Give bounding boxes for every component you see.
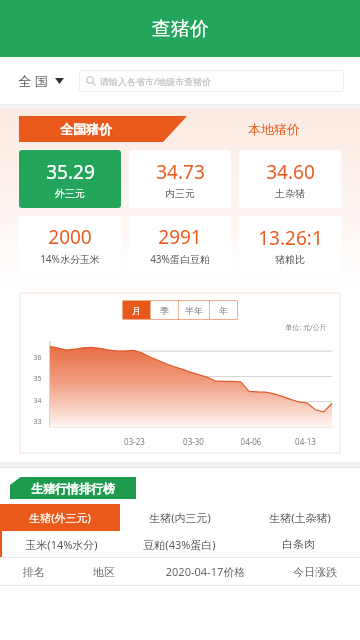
button[interactable]: 季: [151, 301, 178, 319]
button[interactable]: 13.26:1: [239, 216, 341, 274]
staticText: 35.29: [46, 159, 95, 185]
staticText: 本地猪价: [248, 121, 300, 137]
staticText: 请输入各省市/地级市查猪价: [100, 75, 212, 87]
staticText: 白条肉: [282, 537, 315, 551]
staticText: 生猪行情排行榜: [31, 481, 115, 496]
staticText: 全 国: [18, 72, 48, 90]
staticText: 03-23: [105, 436, 164, 447]
staticText: 地区: [67, 565, 141, 579]
button[interactable]: 月: [123, 301, 150, 319]
staticText: 排名: [0, 565, 67, 579]
staticText: 外三元: [55, 187, 85, 200]
staticText: 玉米(14%水分): [25, 537, 98, 552]
staticText: 36: [33, 353, 42, 363]
staticText: 内三元: [165, 187, 195, 200]
staticText: 猪粮比: [275, 253, 305, 266]
staticText: 月: [132, 305, 141, 316]
button[interactable]: 全国猪价: [19, 116, 187, 142]
staticText: 04-13: [279, 436, 332, 447]
staticText: 今日涨跌: [270, 565, 360, 579]
staticText: 单位: 元/公斤: [285, 323, 327, 333]
staticText: 2991: [158, 224, 202, 250]
button[interactable]: 生猪行情排行榜: [10, 477, 136, 499]
staticText: 豆粕(43%蛋白): [143, 537, 216, 552]
button[interactable]: 本地猪价: [187, 116, 360, 142]
button[interactable]: 白条肉: [239, 531, 358, 557]
staticText: 生猪(内三元): [149, 510, 211, 525]
button[interactable]: 豆粕(43%蛋白): [120, 531, 239, 557]
button[interactable]: 年: [210, 301, 237, 319]
staticText: 03-30: [164, 436, 223, 447]
staticText: 2020-04-17价格: [141, 564, 270, 579]
staticText: 14%水分玉米: [40, 252, 100, 266]
staticText: 生猪(土杂猪): [269, 510, 331, 525]
staticText: 33: [33, 417, 42, 427]
staticText: 半年: [185, 305, 203, 316]
button[interactable]: 34.73: [129, 150, 231, 208]
button[interactable]: 半年: [179, 301, 209, 319]
staticText: 查猪价: [152, 17, 209, 41]
staticText: 35: [33, 374, 42, 384]
staticText: 季: [160, 305, 169, 316]
button[interactable]: 请输入各省市/地级市查猪价: [79, 70, 344, 92]
button[interactable]: 34.60: [239, 150, 341, 208]
staticText: 34.73: [156, 159, 205, 185]
button[interactable]: 生猪(外三元): [0, 504, 120, 531]
button[interactable]: 2991: [129, 216, 231, 274]
staticText: 43%蛋白豆粕: [150, 252, 210, 266]
staticText: 生猪(外三元): [29, 510, 91, 525]
staticText: 13.26:1: [258, 225, 323, 251]
staticText: 土杂猪: [275, 187, 305, 200]
staticText: 全国猪价: [60, 121, 112, 137]
staticText: 34.60: [266, 159, 315, 185]
button[interactable]: 35.29: [19, 150, 121, 208]
button[interactable]: 选择地区 全国: [16, 64, 66, 98]
button[interactable]: 生猪(内三元): [120, 504, 240, 531]
staticText: 04-06: [223, 436, 279, 447]
button[interactable]: 玉米(14%水分): [2, 531, 120, 557]
staticText: 34: [33, 396, 42, 406]
staticText: 2000: [48, 224, 92, 250]
button[interactable]: 生猪(土杂猪): [240, 504, 360, 531]
staticText: 年: [219, 305, 228, 316]
button[interactable]: 2000: [19, 216, 121, 274]
